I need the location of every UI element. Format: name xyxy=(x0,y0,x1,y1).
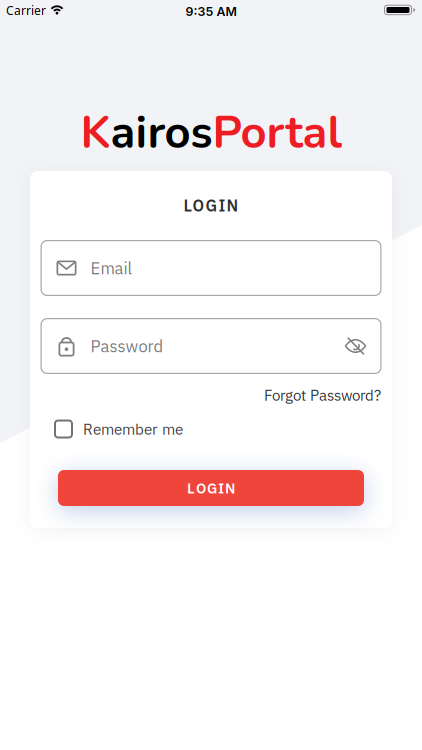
button[interactable]: Password xyxy=(40,318,381,374)
button[interactable] xyxy=(344,337,381,355)
staticText: Carrier xyxy=(6,2,46,18)
button[interactable]: Forgot Password? xyxy=(264,385,381,405)
staticText: airos xyxy=(110,102,212,164)
staticText: Password xyxy=(90,335,163,357)
staticText: L O G I N xyxy=(183,195,238,216)
staticText: Portal xyxy=(212,102,341,164)
staticText: Email xyxy=(90,257,131,279)
staticText: L O G I N xyxy=(187,479,235,497)
button[interactable]: Email xyxy=(40,240,381,296)
staticText: 9:35 AM xyxy=(185,4,236,19)
staticText: Remember me xyxy=(83,419,183,439)
button[interactable]: L O G I N xyxy=(58,470,364,506)
staticText: K xyxy=(80,102,110,164)
button[interactable]: Remember me xyxy=(54,419,183,439)
staticText: Forgot Password? xyxy=(264,385,381,405)
